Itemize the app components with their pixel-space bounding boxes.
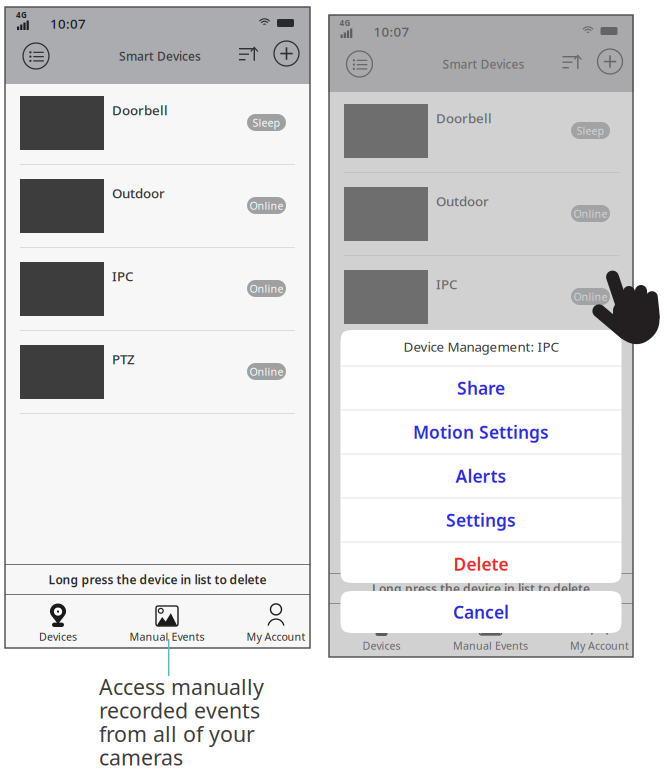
staticText: 10:07 <box>373 23 409 40</box>
staticText: Delete <box>453 552 508 575</box>
staticText: Share <box>457 376 505 399</box>
staticText: Manual Events <box>453 638 528 653</box>
button[interactable]: IPC <box>329 258 634 341</box>
staticText: Outdoor <box>436 192 489 210</box>
button[interactable]: Motion Settings <box>340 410 621 453</box>
staticText: 4G <box>16 10 27 20</box>
staticText: Sleep <box>252 115 280 130</box>
staticText: 4G <box>339 18 350 28</box>
staticText: Settings <box>446 508 516 531</box>
staticText: IPC <box>436 275 457 293</box>
button[interactable]: Alerts <box>340 454 621 497</box>
button[interactable]: My Account <box>228 595 324 648</box>
staticText: Doorbell <box>436 109 492 127</box>
button[interactable]: Devices <box>333 604 429 657</box>
button[interactable]: Doorbell <box>329 92 634 175</box>
button[interactable]: Cancel <box>340 590 621 633</box>
button[interactable]: Settings <box>340 498 621 541</box>
button[interactable]: My Account <box>551 604 647 657</box>
button[interactable]: Devices <box>10 595 106 648</box>
staticText: My Account <box>570 638 629 653</box>
staticText: Long press the device in list to delete <box>372 580 590 596</box>
staticText: from all of your <box>99 720 255 748</box>
staticText: 10:07 <box>50 15 86 32</box>
staticText: My Account <box>246 629 305 644</box>
staticText: Cancel <box>453 600 509 623</box>
staticText: Access manually <box>99 673 264 701</box>
staticText: Motion Settings <box>413 420 549 443</box>
staticText: Online <box>573 206 607 221</box>
button[interactable]: Menu <box>19 39 53 73</box>
staticText: Online <box>249 364 283 379</box>
staticText: IPC <box>112 267 133 285</box>
button[interactable]: IPC <box>5 250 310 333</box>
button[interactable]: Delete <box>340 542 621 585</box>
staticText: Online <box>249 198 283 213</box>
staticText: Devices <box>362 638 400 653</box>
staticText: Doorbell <box>112 101 168 119</box>
button[interactable]: Manual Events <box>119 595 215 648</box>
button[interactable]: Outdoor <box>329 175 634 258</box>
staticText: cameras <box>99 743 183 769</box>
staticText: Outdoor <box>112 184 165 202</box>
staticText: Long press the device in list to delete <box>48 571 266 587</box>
staticText: PTZ <box>436 358 459 376</box>
button[interactable]: Add device <box>273 40 300 67</box>
button[interactable]: PTZ <box>5 333 310 416</box>
button[interactable]: Share <box>340 366 621 409</box>
button[interactable]: Sort <box>238 44 260 64</box>
staticText: Online <box>573 289 607 304</box>
staticText: Manual Events <box>129 629 204 644</box>
staticText: Online <box>249 281 283 296</box>
staticText: Device Management: IPC <box>403 338 558 355</box>
button[interactable]: Menu <box>342 47 376 81</box>
button[interactable]: Outdoor <box>5 167 310 250</box>
staticText: Alerts <box>455 464 506 487</box>
staticText: Smart Devices <box>442 56 524 72</box>
button[interactable]: Manual Events <box>442 604 538 657</box>
button[interactable]: Sort <box>561 52 583 72</box>
staticText: PTZ <box>112 350 135 368</box>
button[interactable]: PTZ <box>329 341 634 424</box>
button[interactable]: Add device <box>596 48 623 75</box>
staticText: Smart Devices <box>119 48 201 64</box>
staticText: Sleep <box>576 123 604 138</box>
staticText: recorded events <box>99 696 260 724</box>
button[interactable]: Doorbell <box>5 84 310 167</box>
staticText: Devices <box>39 629 77 644</box>
